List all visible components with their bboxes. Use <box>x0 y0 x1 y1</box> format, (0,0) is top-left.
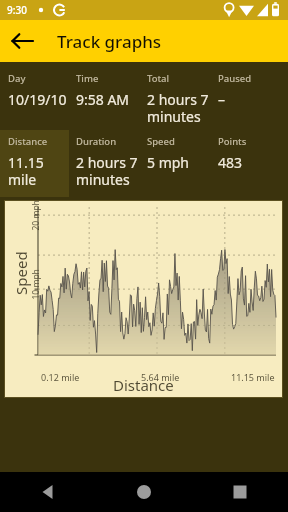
staticText: Total <box>147 72 170 85</box>
staticText: 0.12 mile <box>41 371 80 383</box>
button[interactable]: Time <box>76 72 145 109</box>
button[interactable]: Duration <box>76 135 145 189</box>
staticText: Distance <box>113 375 174 395</box>
staticText: 11.15 mile <box>8 153 74 189</box>
staticText: 9:58 AM <box>76 90 130 109</box>
staticText: Speed <box>11 251 31 295</box>
staticText: 2 hours 7 minutes <box>76 153 145 189</box>
staticText: Speed <box>147 135 175 148</box>
staticText: Distance <box>8 135 48 148</box>
staticText: 10 mph <box>29 268 41 299</box>
staticText: 11.15 mile <box>231 371 275 383</box>
staticText: 2 hours 7 minutes <box>147 90 216 126</box>
staticText: – <box>218 90 225 109</box>
staticText: Paused <box>218 72 252 85</box>
staticText: 5.64 mile <box>141 371 180 383</box>
button[interactable]: Recent apps <box>220 472 260 512</box>
button[interactable]: Back <box>28 472 68 512</box>
staticText: 10/19/10 <box>8 90 67 109</box>
staticText: 9:30 <box>7 3 27 17</box>
button[interactable]: Day <box>8 72 74 109</box>
staticText: 20 mph <box>29 199 41 230</box>
button[interactable]: Home <box>124 472 164 512</box>
staticText: Day <box>8 72 26 85</box>
button[interactable]: Back <box>7 25 39 57</box>
staticText: Track graphs <box>57 30 162 53</box>
staticText: Points <box>218 135 247 148</box>
button[interactable]: Total <box>147 72 216 126</box>
button[interactable]: Speed <box>147 135 216 172</box>
staticText: Duration <box>76 135 117 148</box>
button[interactable]: Speed versus distance graph <box>5 201 282 397</box>
button[interactable]: Distance <box>8 135 74 189</box>
button[interactable]: Points <box>218 135 282 172</box>
staticText: Time <box>76 72 99 85</box>
button[interactable]: Paused <box>218 72 282 109</box>
staticText: 483 <box>218 153 243 172</box>
staticText: 5 mph <box>147 153 189 172</box>
